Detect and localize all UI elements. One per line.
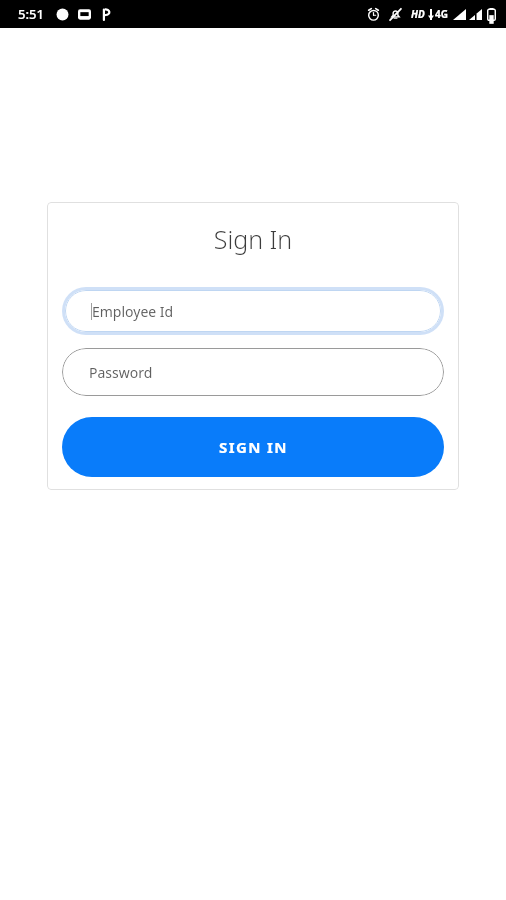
button[interactable]: Password [62,348,444,396]
staticText: 5:51 [18,5,44,23]
staticText: Employee Id [92,302,174,321]
button[interactable]: SIGN IN [62,417,444,477]
staticText: SIGN IN [219,437,288,457]
staticText: Password [89,363,153,382]
staticText: Sign In [62,222,444,256]
staticText: HD [411,7,425,21]
staticText: 4G [435,7,448,21]
button[interactable]: Employee Id [62,287,444,335]
